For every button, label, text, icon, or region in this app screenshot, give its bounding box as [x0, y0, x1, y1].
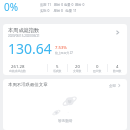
staticText: 5: [56, 63, 59, 69]
staticText: 4: [116, 63, 119, 69]
staticText: 2020/06/15-2020/06/21: [8, 34, 40, 38]
staticText: 应用 11 用时 0 电量 0 用时 0: [40, 2, 85, 7]
staticText: 261.28: [11, 63, 25, 69]
staticText: 照片数: [93, 69, 102, 73]
staticText: 文章数: [73, 69, 82, 73]
staticText: 有效成就点数: [9, 69, 26, 73]
staticText: 本周成就指数: [8, 27, 40, 34]
staticText: 0: [96, 63, 99, 69]
staticText: 本周不活跃最佳文章: [8, 82, 48, 88]
staticText: 数词数: [113, 69, 122, 73]
staticText: 较上周提升 27: [55, 51, 73, 55]
other: 详情: [114, 29, 121, 36]
button[interactable]: 本周成就指数: [3, 24, 127, 75]
staticText: 全部: [109, 84, 116, 88]
staticText: 0%: [4, 0, 19, 14]
staticText: 7.53%: [55, 45, 67, 51]
staticText: 20: [75, 63, 80, 69]
staticText: 实际 0 用时 0 电量 11: [40, 8, 77, 13]
staticText: 活跃数: [53, 69, 62, 73]
button[interactable]: 全部: [109, 83, 122, 88]
staticText: 130.64: [8, 39, 52, 58]
staticText: 暂无数据: [58, 119, 73, 124]
